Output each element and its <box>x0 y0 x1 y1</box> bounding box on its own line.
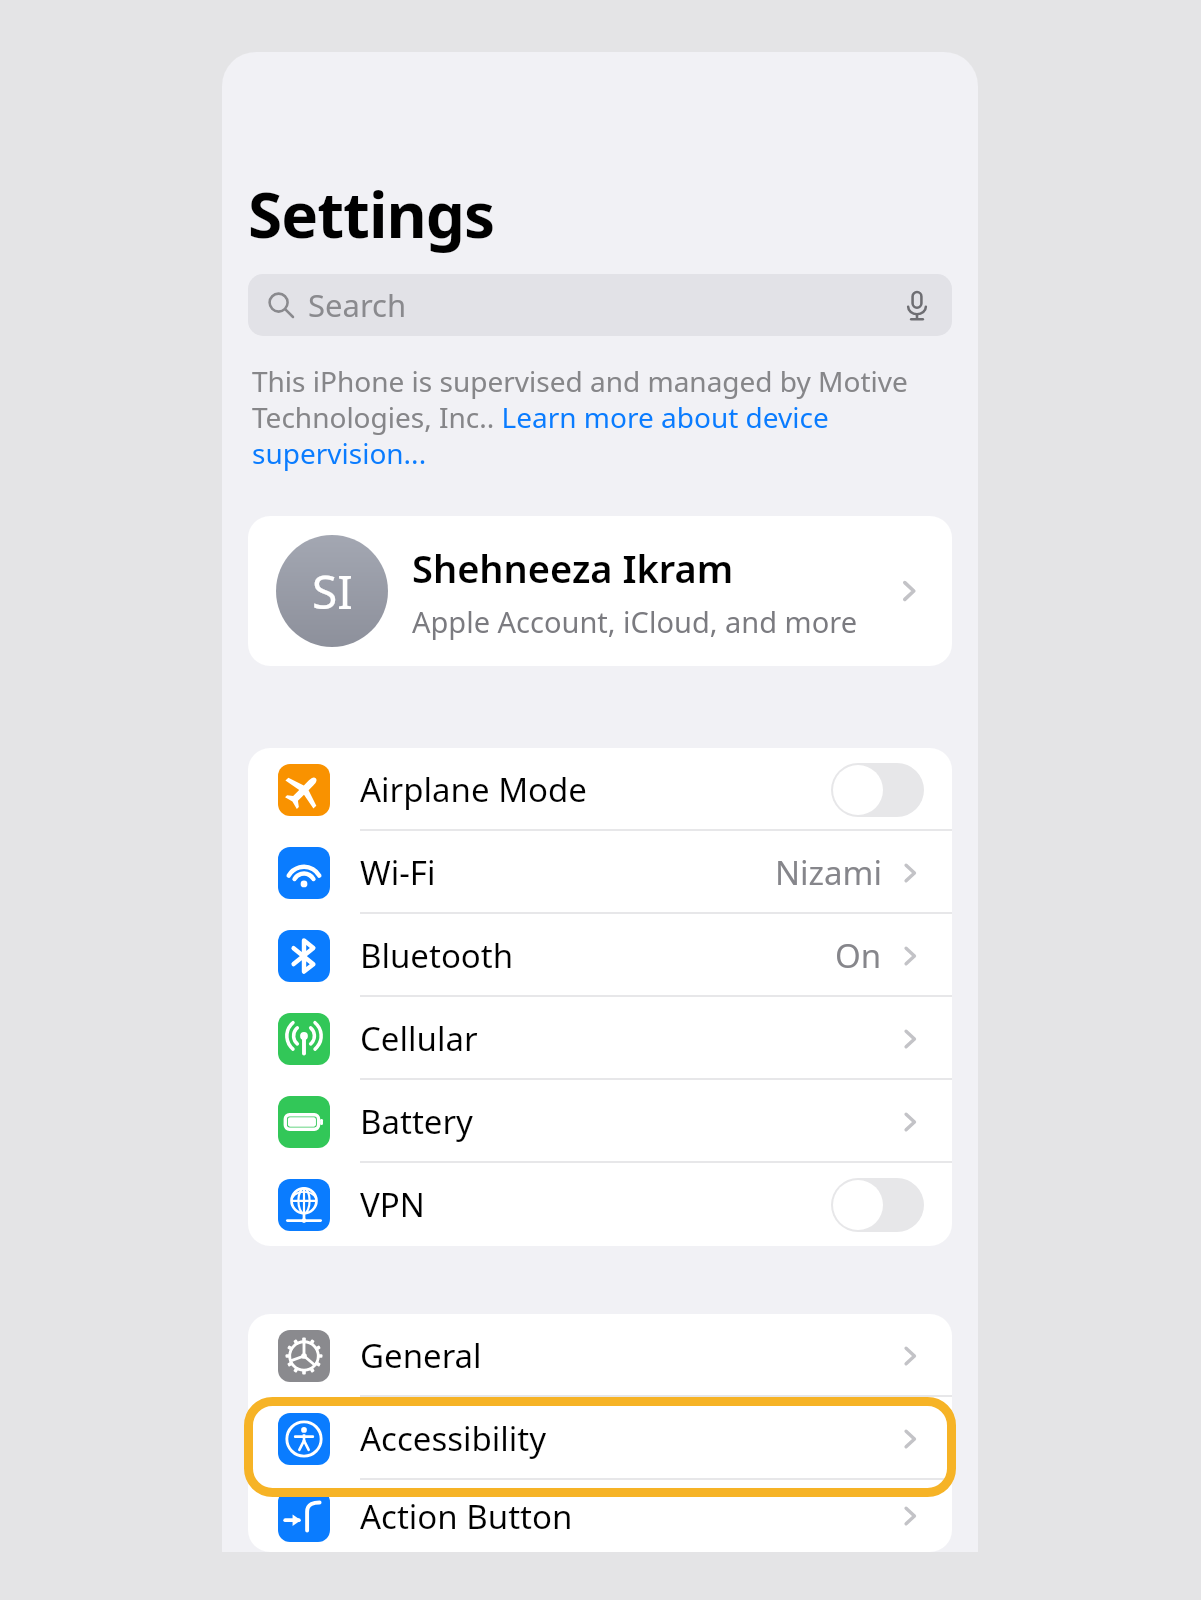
staticText: General <box>360 1333 482 1378</box>
staticText: Bluetooth <box>360 933 514 978</box>
button[interactable]: Cellular <box>248 997 952 1080</box>
button[interactable]: Battery <box>248 1080 952 1163</box>
button[interactable]: Voice search <box>900 288 934 322</box>
staticText: Shehneeza Ikram <box>412 542 734 594</box>
button[interactable]: Search <box>248 274 952 336</box>
button[interactable]: Airplane Mode toggle <box>831 763 924 817</box>
staticText: Action Button <box>360 1494 573 1539</box>
staticText: Cellular <box>360 1016 478 1061</box>
staticText: Settings <box>248 172 495 256</box>
button[interactable]: Action Button <box>248 1480 952 1552</box>
button[interactable]: Wi-Fi <box>248 831 952 914</box>
staticText: SI <box>312 560 353 623</box>
staticText: Wi-Fi <box>360 850 436 895</box>
button[interactable]: Accessibility <box>248 1397 952 1480</box>
staticText: Apple Account, iCloud, and more <box>412 602 858 641</box>
button[interactable]: VPN <box>248 1163 952 1246</box>
staticText: Search <box>308 284 407 326</box>
button[interactable]: General <box>248 1314 952 1397</box>
staticText: VPN <box>360 1182 425 1227</box>
staticText: Battery <box>360 1099 473 1144</box>
button[interactable]: VPN toggle <box>831 1178 924 1232</box>
staticText: Airplane Mode <box>360 767 587 812</box>
staticText: Accessibility <box>360 1416 547 1461</box>
staticText: Nizami <box>775 850 882 895</box>
button[interactable]: SI <box>248 516 952 666</box>
staticText: This iPhone is supervised and managed by… <box>252 362 938 472</box>
button[interactable]: Bluetooth <box>248 914 952 997</box>
staticText: On <box>835 933 882 978</box>
button[interactable]: Airplane Mode <box>248 748 952 831</box>
